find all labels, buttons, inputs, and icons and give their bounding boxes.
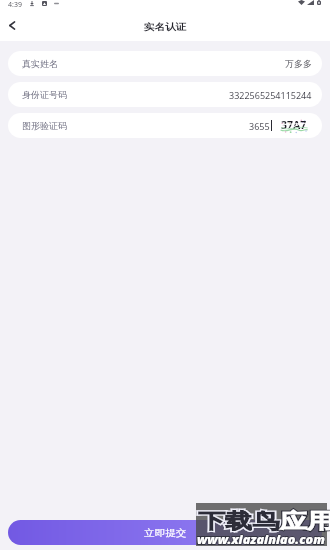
staticText: 37A7: [281, 118, 307, 132]
staticText: 实名认证: [0, 21, 330, 33]
button[interactable]: 换一张验证码: [280, 119, 308, 133]
staticText: 4:39: [8, 0, 22, 10]
button[interactable]: 返回: [3, 17, 20, 34]
staticText: 下载鸟: [198, 508, 280, 534]
staticText: 真实姓名: [22, 58, 58, 69]
staticText: 3655: [249, 120, 270, 132]
staticText: www.xiazainiao.com: [197, 531, 325, 548]
button[interactable]: 真实姓名: [8, 51, 322, 76]
staticText: 下载鸟: [198, 508, 280, 534]
staticText: 身份证号码: [22, 89, 67, 100]
staticText: 3322565254115244: [229, 89, 312, 101]
button[interactable]: 身份证号码: [8, 82, 322, 107]
staticText: 应用: [280, 508, 330, 534]
button[interactable]: 立即提交: [8, 520, 322, 545]
staticText: 万多多: [285, 58, 312, 69]
staticText: www.xiazainiao.com: [197, 531, 325, 548]
staticText: 应用: [280, 508, 330, 534]
staticText: 立即提交: [144, 527, 187, 538]
button[interactable]: 图形验证码: [8, 113, 322, 138]
staticText: 图形验证码: [22, 120, 67, 131]
